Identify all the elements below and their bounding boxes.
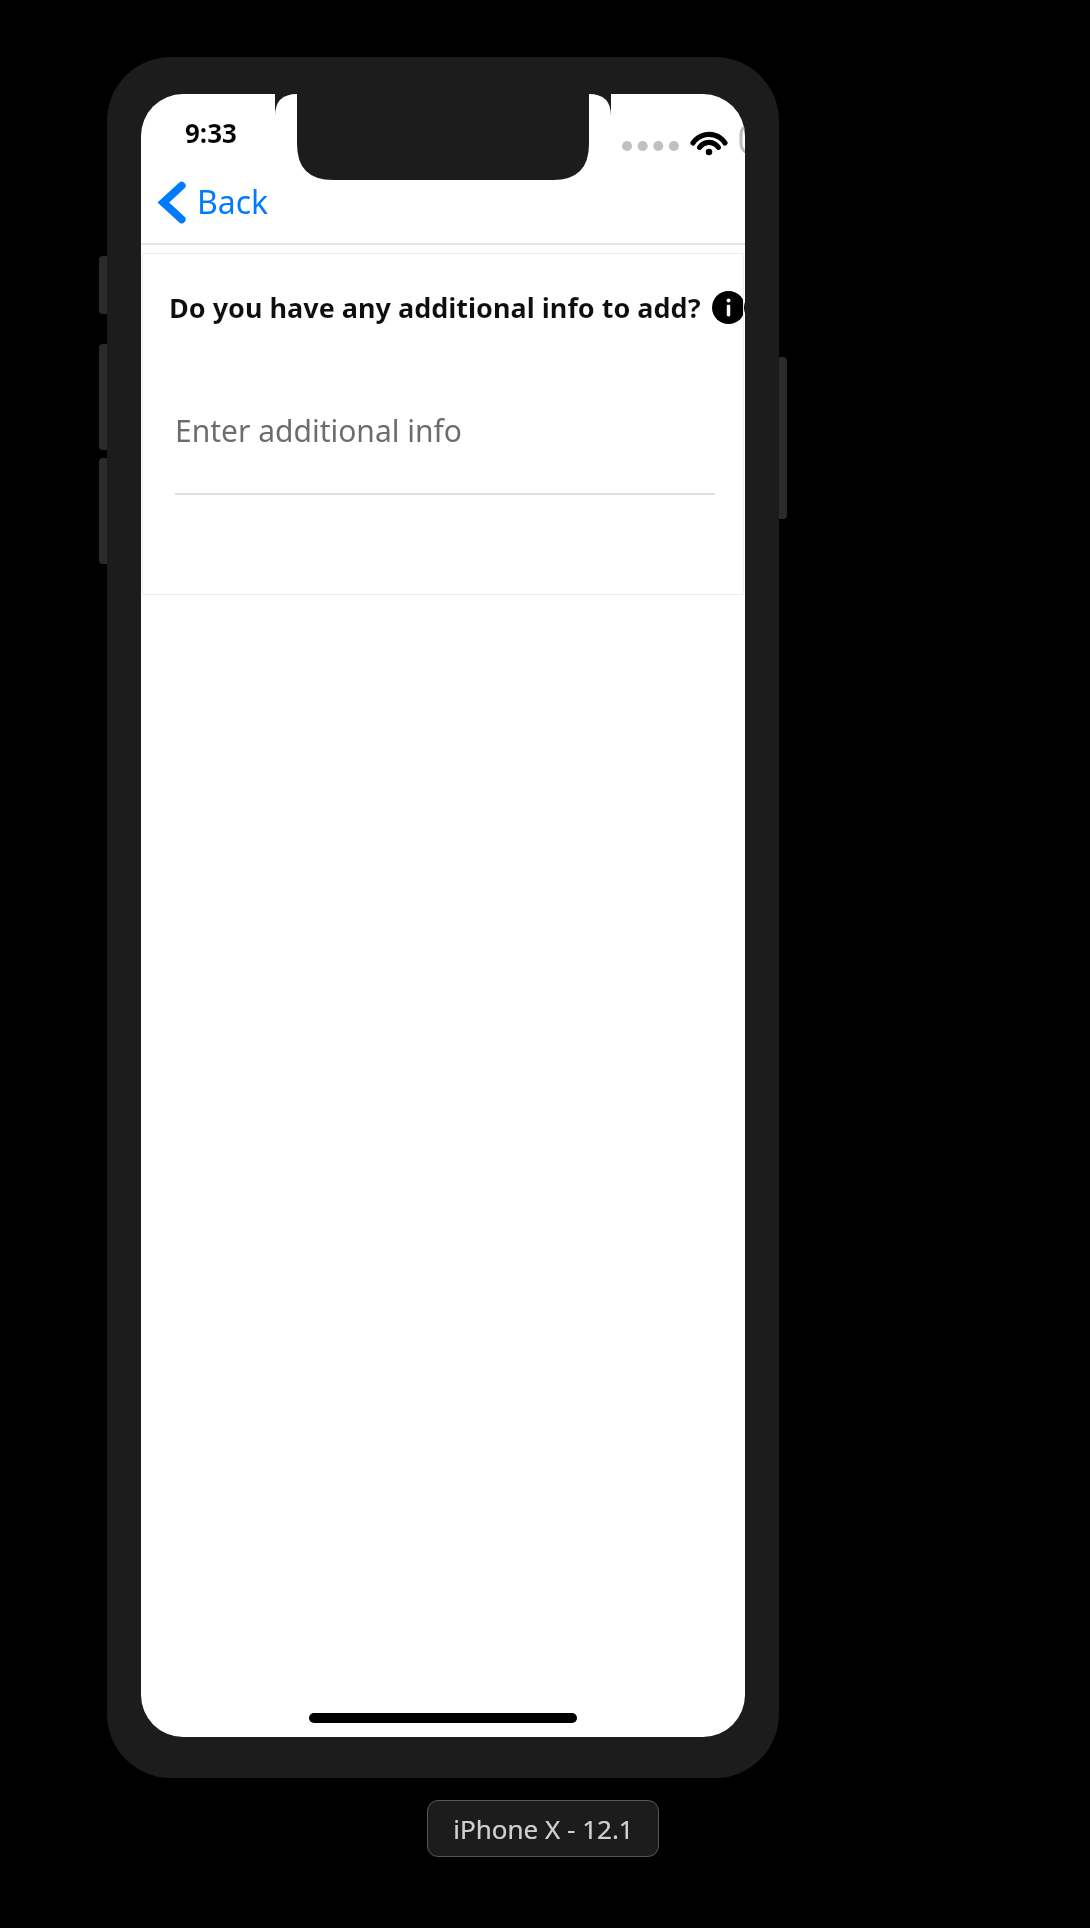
button[interactable]: More information: [712, 291, 745, 324]
staticText: 9:33: [185, 115, 237, 150]
staticText: Enter additional info: [175, 410, 463, 451]
staticText: Do you have any additional info to add?: [169, 289, 701, 326]
button[interactable]: Enter additional info: [175, 405, 715, 495]
button[interactable]: iPhone X - 12.1: [427, 1800, 659, 1857]
button[interactable]: Back: [161, 170, 269, 234]
staticText: Back: [197, 180, 269, 224]
staticText: iPhone X - 12.1: [453, 1811, 634, 1846]
